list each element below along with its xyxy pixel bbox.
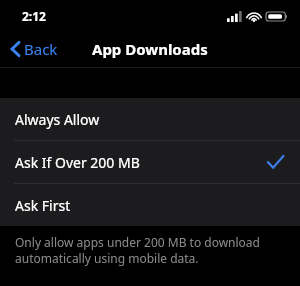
button[interactable]: Ask First — [0, 184, 300, 226]
other: Selected — [267, 155, 284, 169]
staticText: Ask First — [15, 196, 71, 215]
staticText: Ask If Over 200 MB — [15, 153, 140, 172]
staticText: Back — [24, 39, 58, 59]
button[interactable]: Always Allow — [0, 98, 300, 140]
staticText: 2:12 — [22, 8, 46, 24]
button[interactable]: Ask If Over 200 MB — [0, 141, 300, 183]
button[interactable]: Back — [6, 35, 62, 63]
staticText: App Downloads — [92, 39, 208, 59]
staticText: Always Allow — [15, 110, 100, 129]
staticText: Only allow apps under 200 MB to download… — [15, 234, 260, 266]
